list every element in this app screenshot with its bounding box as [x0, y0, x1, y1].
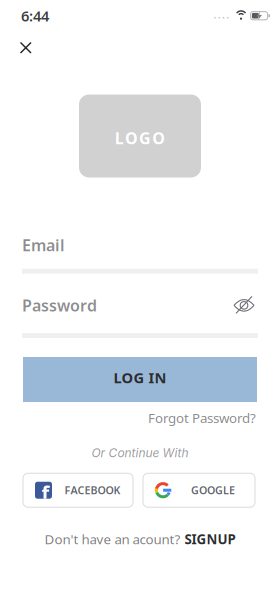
button[interactable]: SIGNUP: [184, 530, 235, 548]
staticText: SIGNUP: [184, 530, 235, 548]
staticText: f: [41, 479, 49, 506]
staticText: Forgot Password?: [148, 409, 256, 427]
staticText: Or Continue With: [91, 446, 188, 460]
button[interactable]: GOOGLE: [143, 473, 255, 507]
button[interactable]: LOG IN: [23, 357, 257, 402]
staticText: O: [125, 127, 138, 149]
staticText: 6:44: [21, 6, 49, 25]
staticText: GOOGLE: [191, 483, 235, 497]
staticText: Email: [22, 234, 65, 256]
staticText: L: [115, 127, 124, 149]
staticText: LOG IN: [113, 368, 166, 387]
button[interactable]: Forgot Password?: [148, 409, 256, 427]
button[interactable]: f: [23, 473, 133, 507]
button[interactable]: Close: [14, 36, 37, 59]
staticText: Don't have an acount?: [44, 530, 180, 548]
staticText: Password: [22, 295, 97, 316]
staticText: O: [152, 127, 165, 149]
button[interactable]: Show password: [233, 297, 258, 313]
staticText: G: [139, 127, 151, 149]
staticText: FACEBOOK: [64, 483, 120, 497]
